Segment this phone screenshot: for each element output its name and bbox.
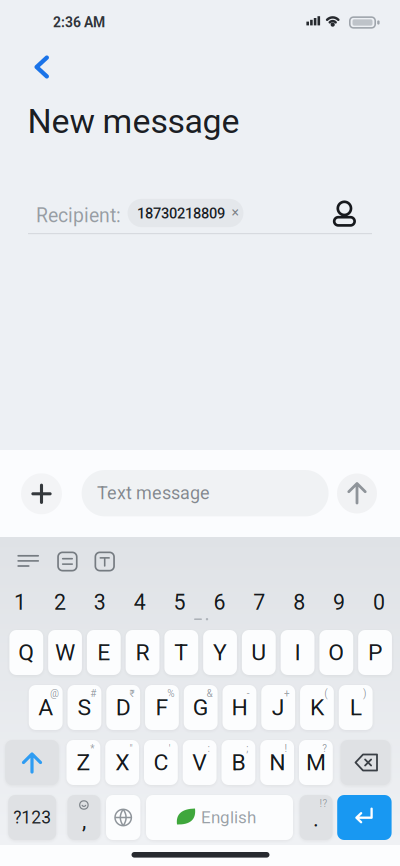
staticText: * [90,743,94,754]
button[interactable]: V [183,740,217,785]
button[interactable]: F [145,685,179,730]
button[interactable]: M [299,740,333,785]
button[interactable]: K [300,685,334,730]
button[interactable]: 1 [1,585,39,619]
staticText: M [306,749,326,776]
staticText: & [207,688,213,699]
button[interactable]: 6 [200,585,238,619]
button[interactable]: 0 [360,585,398,619]
button[interactable]: Period [300,795,333,840]
button[interactable]: P [358,630,392,675]
staticText: 3 [94,590,106,615]
staticText: X [115,749,129,776]
staticText: - [247,688,250,699]
staticText: 0 [373,590,385,615]
button[interactable]: W [48,630,82,675]
staticText: E [97,639,110,666]
button[interactable]: Delete [340,740,390,785]
button[interactable]: 9 [320,585,358,619]
button[interactable] [127,199,243,227]
button[interactable]: Z [66,740,100,785]
button[interactable]: Space [146,795,293,840]
staticText: !? [320,798,328,809]
button[interactable]: C [144,740,178,785]
staticText: O [328,639,344,666]
staticText: ; [246,743,248,754]
button[interactable]: 4 [121,585,159,619]
staticText: L [350,694,362,721]
button[interactable]: Send [337,473,377,513]
button[interactable]: E [87,630,121,675]
button[interactable]: 2 [41,585,79,619]
button[interactable]: R [126,630,159,675]
staticText: C [153,749,168,776]
staticText: 18730218809 [137,205,225,222]
button[interactable]: Notes [57,551,78,571]
button[interactable]: Clipboard [15,551,41,571]
button[interactable]: Return [337,795,392,840]
staticText: T [174,639,188,666]
staticText: % [167,688,174,699]
staticText: G [193,694,209,721]
staticText: ₹ [130,688,135,699]
button[interactable]: Shift [5,740,59,785]
staticText: 9 [333,590,345,615]
staticText: 6 [213,590,225,615]
staticText: 8 [293,590,305,615]
button[interactable]: Comma [67,795,100,840]
button[interactable]: Back [19,44,63,88]
button[interactable]: ?123 [8,795,56,840]
staticText: × [231,204,238,221]
button[interactable]: X [105,740,139,785]
button[interactable]: U [242,630,276,675]
button[interactable]: S [68,685,101,730]
staticText: S [77,694,91,721]
button[interactable]: 8 [280,585,318,619]
staticText: 2:36 AM [53,14,105,31]
staticText: ) [363,688,366,699]
button[interactable]: A [29,685,63,730]
staticText: I [295,639,301,666]
button[interactable]: O [319,630,353,675]
staticText: 5 [174,590,186,615]
button[interactable]: Q [9,630,43,675]
button[interactable]: 3 [81,585,119,619]
button[interactable]: G [184,685,218,730]
staticText: ( [324,688,327,699]
button[interactable]: Switch keyboard [106,795,140,840]
button[interactable]: L [339,685,373,730]
staticText: @ [50,688,59,699]
staticText: New message [27,102,239,141]
staticText: English [201,807,256,827]
button[interactable]: Text message [82,470,329,516]
staticText: 4 [134,590,146,615]
button[interactable]: 5 [161,585,199,619]
button[interactable]: 7 [240,585,278,619]
staticText: 2 [54,590,66,615]
staticText: ! [285,743,288,754]
staticText: # [90,688,96,699]
staticText: " [130,743,133,754]
staticText: V [192,749,207,776]
staticText: D [116,694,131,721]
button[interactable]: J [261,685,295,730]
button[interactable]: Attach [21,473,62,514]
button[interactable]: I [281,630,314,675]
button[interactable]: H [222,685,256,730]
staticText: + [284,688,290,699]
staticText: Q [18,639,34,666]
button[interactable]: Choose contact [322,195,366,231]
staticText: Z [76,749,90,776]
staticText: W [55,639,75,666]
button[interactable]: T [164,630,198,675]
button[interactable]: B [221,740,255,785]
staticText: , [82,808,86,833]
button[interactable]: Text edit [94,551,115,571]
button[interactable]: Y [203,630,237,675]
staticText: . [313,806,319,832]
staticText: B [231,749,245,776]
staticText: : [208,743,210,754]
button[interactable]: D [106,685,140,730]
staticText: K [310,694,324,721]
button[interactable]: N [260,740,294,785]
